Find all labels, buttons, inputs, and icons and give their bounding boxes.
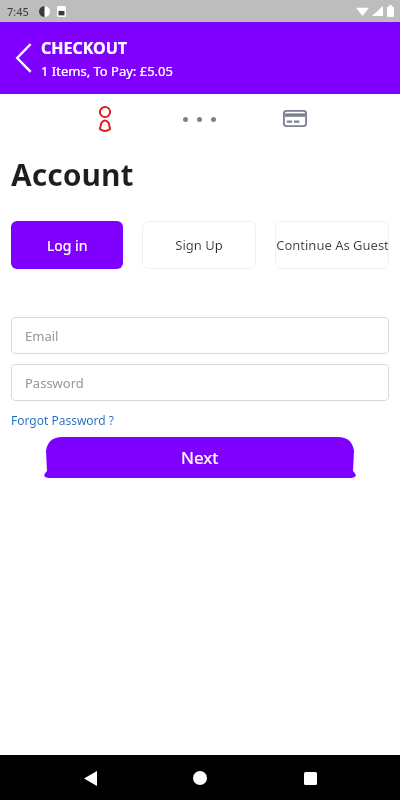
button[interactable]: Back [70, 758, 110, 798]
staticText: Password [25, 374, 84, 392]
staticText: Next [181, 446, 219, 469]
button[interactable]: Email [11, 317, 389, 354]
staticText: Sign Up [175, 236, 223, 254]
button[interactable]: Forgot Password ? [11, 412, 115, 428]
staticText: 7:45 [7, 4, 29, 19]
button[interactable]: Account step [88, 101, 122, 135]
button[interactable]: Log in [11, 221, 123, 269]
button[interactable]: Password [11, 364, 389, 401]
button[interactable]: Next [40, 437, 360, 478]
staticText: 1 Items, To Pay: £5.05 [41, 62, 173, 80]
staticText: Account [11, 154, 134, 195]
button[interactable]: Payment step [278, 101, 312, 135]
staticText: Continue As Guest [276, 236, 389, 254]
button[interactable]: Continue As Guest [275, 221, 389, 269]
staticText: CHECKOUT [41, 37, 128, 59]
button[interactable]: Back [8, 43, 38, 73]
staticText: Email [25, 327, 59, 345]
button[interactable]: Home [180, 758, 220, 798]
staticText: Log in [47, 236, 88, 255]
button[interactable]: Recents [290, 758, 330, 798]
button[interactable]: Sign Up [142, 221, 256, 269]
